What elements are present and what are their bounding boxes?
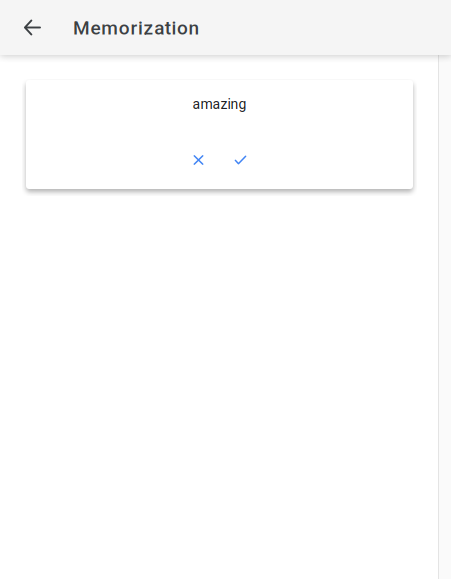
staticText: amazing xyxy=(192,96,246,112)
button[interactable]: Back xyxy=(12,7,52,47)
button[interactable]: Mark as learned xyxy=(228,148,252,172)
button[interactable]: Mark as not learned xyxy=(186,148,210,172)
staticText: Memorization xyxy=(73,17,200,39)
